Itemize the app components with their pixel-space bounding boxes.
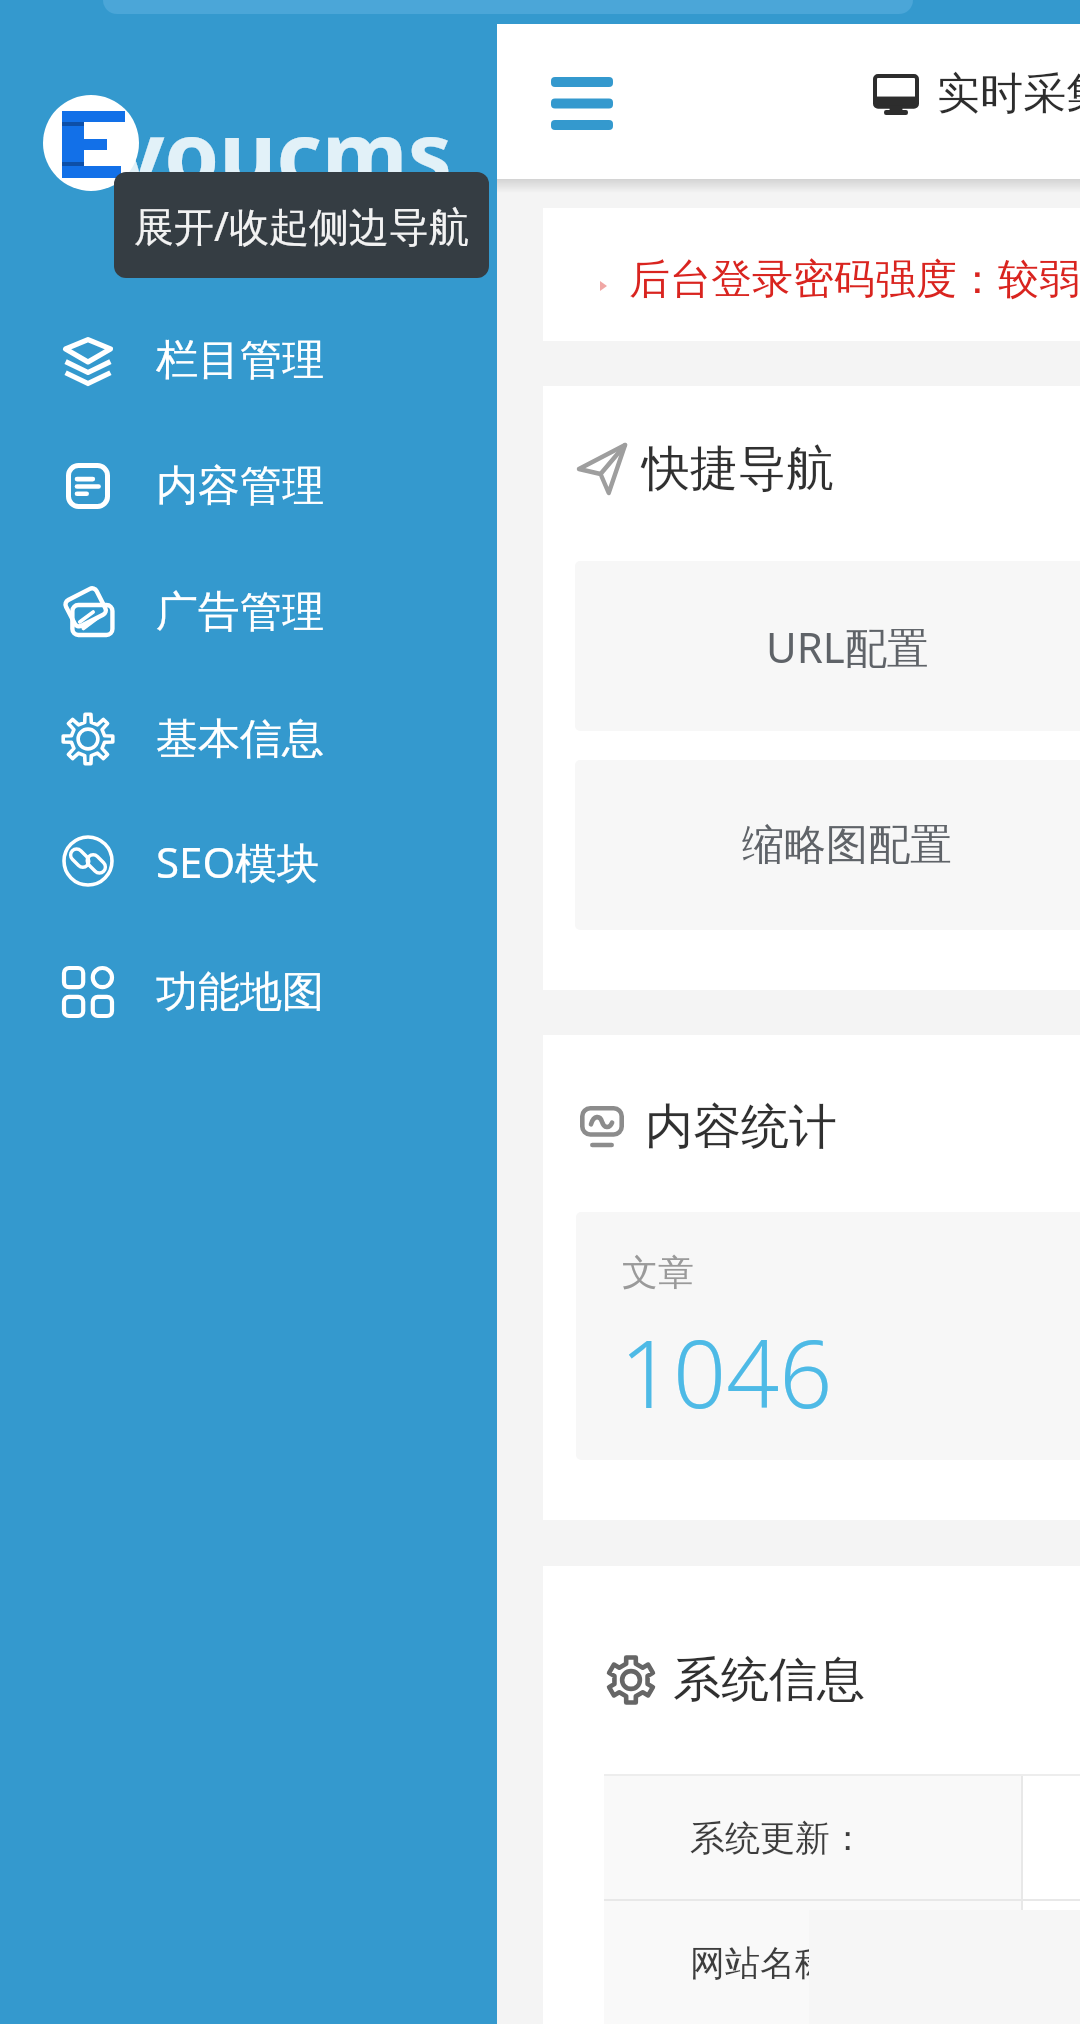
button[interactable]: 广告管理 bbox=[0, 550, 497, 674]
button[interactable]: 栏目管理 bbox=[0, 298, 497, 422]
staticText: URL配置 bbox=[766, 618, 929, 675]
button[interactable]: 基本信息 bbox=[0, 677, 497, 801]
button[interactable]: Eyoucms home bbox=[43, 95, 139, 191]
staticText: 文章 bbox=[622, 1250, 694, 1295]
staticText: 内容管理 bbox=[156, 460, 324, 513]
button[interactable]: 内容统计 bbox=[579, 1097, 837, 1157]
staticText: 实时采集 bbox=[937, 67, 1080, 121]
staticText: 栏目管理 bbox=[156, 334, 324, 387]
button[interactable]: 实时采集 bbox=[873, 67, 1080, 121]
staticText: 内容统计 bbox=[645, 1097, 837, 1157]
button[interactable]: 文章 bbox=[576, 1212, 1080, 1460]
button[interactable]: URL配置 bbox=[575, 561, 1080, 731]
staticText: 缩略图配置 bbox=[742, 819, 952, 872]
staticText: 网站名称 bbox=[690, 1941, 830, 1985]
button[interactable]: Toggle navigation menu bbox=[517, 37, 647, 167]
button[interactable]: 快捷导航 bbox=[578, 439, 834, 499]
staticText: 广告管理 bbox=[156, 586, 324, 639]
button[interactable]: SEO模块 bbox=[0, 799, 497, 923]
button[interactable]: 内容管理 bbox=[0, 424, 497, 548]
staticText: 快捷导航 bbox=[642, 439, 834, 499]
staticText: youcms bbox=[114, 92, 452, 212]
button[interactable]: 展开/收起侧边导航 bbox=[114, 172, 489, 278]
staticText: 1046 bbox=[620, 1309, 833, 1436]
staticText: 系统信息 bbox=[673, 1650, 865, 1710]
staticText: 后台登录密码强度：较弱，容易被破解 bbox=[629, 254, 1080, 306]
button[interactable]: 功能地图 bbox=[0, 930, 497, 1054]
button[interactable]: 缩略图配置 bbox=[575, 760, 1080, 930]
staticText: 系统更新： bbox=[690, 1816, 865, 1860]
staticText: 展开/收起侧边导航 bbox=[134, 198, 469, 253]
staticText: 功能地图 bbox=[156, 966, 324, 1019]
staticText: SEO模块 bbox=[156, 833, 320, 890]
staticText: 基本信息 bbox=[156, 713, 324, 766]
button[interactable]: 系统信息 bbox=[607, 1650, 865, 1710]
